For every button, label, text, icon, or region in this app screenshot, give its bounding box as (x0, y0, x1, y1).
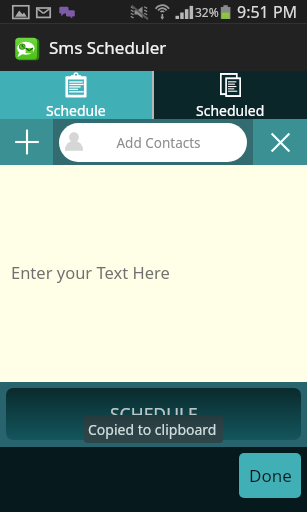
button[interactable]: Add Contacts (59, 123, 247, 162)
staticText: Scheduled (196, 101, 265, 119)
button[interactable]: Schedule (0, 71, 152, 119)
button[interactable]: Scheduled (154, 71, 307, 119)
button[interactable]: SCHEDULE (6, 388, 301, 440)
staticText: Done (249, 464, 292, 487)
staticText: 32% (195, 4, 219, 20)
staticText: Sms Scheduler (49, 36, 167, 59)
button[interactable]: Add contact (0, 119, 53, 165)
button[interactable]: Clear contacts (253, 119, 307, 165)
staticText: Copied to clipboard (88, 420, 217, 439)
staticText: Schedule (46, 101, 106, 119)
staticText: Enter your Text Here (11, 261, 170, 283)
staticText: Add Contacts (84, 134, 233, 152)
staticText: 9:51 PM (237, 1, 298, 23)
staticText: SCHEDULE (110, 402, 198, 426)
button[interactable]: Done (239, 453, 301, 498)
